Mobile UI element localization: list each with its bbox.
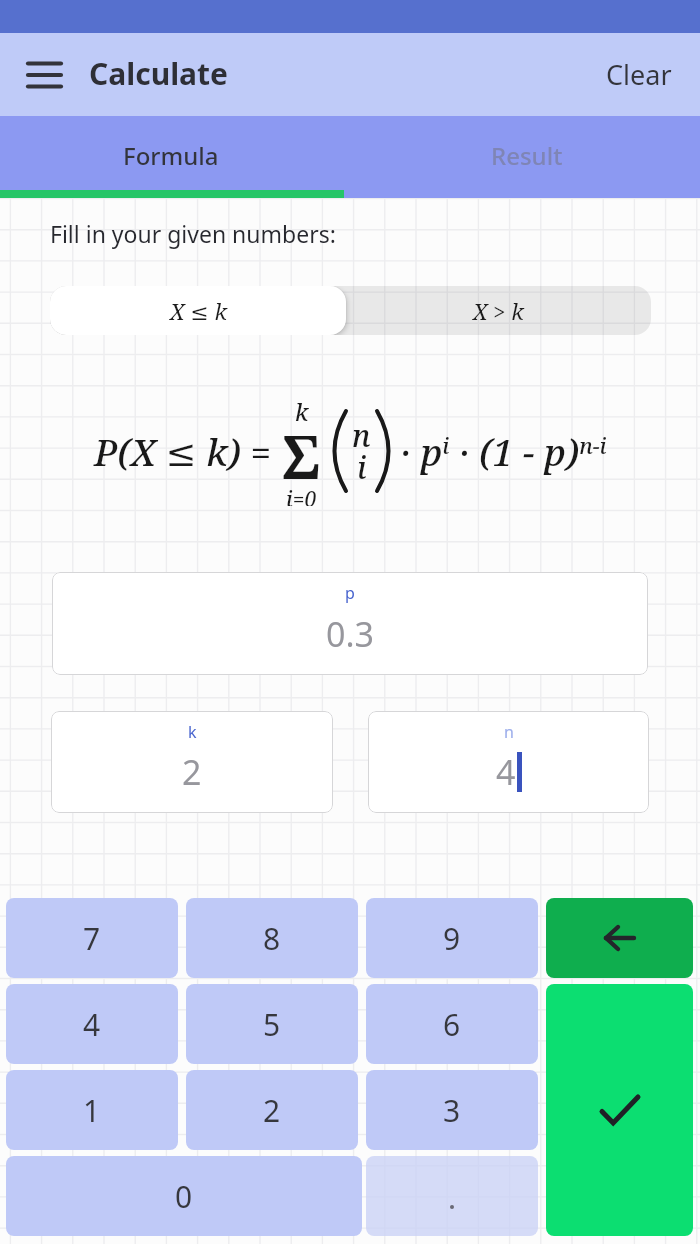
button[interactable]: p (52, 572, 648, 675)
button[interactable]: 3 (366, 1070, 538, 1150)
button[interactable]: Formula (0, 116, 350, 198)
staticText: 2 (182, 749, 202, 795)
staticText: 5 (263, 1004, 281, 1045)
button[interactable]: 2 (186, 1070, 358, 1150)
staticText: 1 (83, 1090, 101, 1131)
staticText: Fill in your given numbers: (50, 218, 336, 249)
staticText: 8 (263, 918, 281, 959)
staticText: Clear (606, 56, 672, 93)
staticText: 4 (83, 1004, 101, 1045)
staticText: 7 (83, 918, 101, 959)
button[interactable]: 8 (186, 898, 358, 978)
staticText: 2 (263, 1090, 281, 1131)
button[interactable] (366, 1156, 538, 1236)
staticText: Calculate (89, 53, 228, 94)
staticText: 0 (175, 1176, 193, 1217)
button[interactable]: Clear (596, 46, 682, 103)
staticText: 4 (496, 749, 516, 795)
staticText: Σ (281, 415, 322, 497)
button[interactable]: 5 (186, 984, 358, 1064)
staticText: Formula (123, 139, 219, 172)
staticText: n (504, 721, 514, 743)
button[interactable]: X > k (346, 286, 651, 335)
staticText: 3 (443, 1090, 461, 1131)
staticText: k (188, 721, 197, 743)
staticText: n (352, 415, 371, 456)
button[interactable]: X ≤ k (50, 286, 346, 335)
staticText: k (295, 396, 309, 427)
staticText: · pi · (1 − p)n−i (400, 426, 607, 476)
staticText: X > k (473, 296, 524, 326)
button[interactable] (20, 51, 68, 99)
staticText: p (345, 582, 355, 604)
button[interactable]: 4 (6, 984, 178, 1064)
staticText: Result (491, 139, 563, 172)
button[interactable]: Result (350, 116, 700, 198)
button[interactable]: 0 (6, 1156, 362, 1236)
staticText: P(X ≤ k) = (94, 426, 272, 476)
staticText: i=0 (286, 485, 317, 506)
button[interactable] (546, 984, 693, 1236)
staticText: X ≤ k (170, 296, 227, 326)
button[interactable]: 9 (366, 898, 538, 978)
staticText: 6 (443, 1004, 461, 1045)
staticText: i (357, 447, 367, 488)
button[interactable]: 7 (6, 898, 178, 978)
staticText: 9 (443, 918, 461, 959)
button[interactable]: 1 (6, 1070, 178, 1150)
staticText: 0.3 (326, 611, 375, 657)
button[interactable]: 6 (366, 984, 538, 1064)
button[interactable] (546, 898, 693, 978)
button[interactable]: n (368, 711, 649, 813)
button[interactable]: k (51, 711, 333, 813)
